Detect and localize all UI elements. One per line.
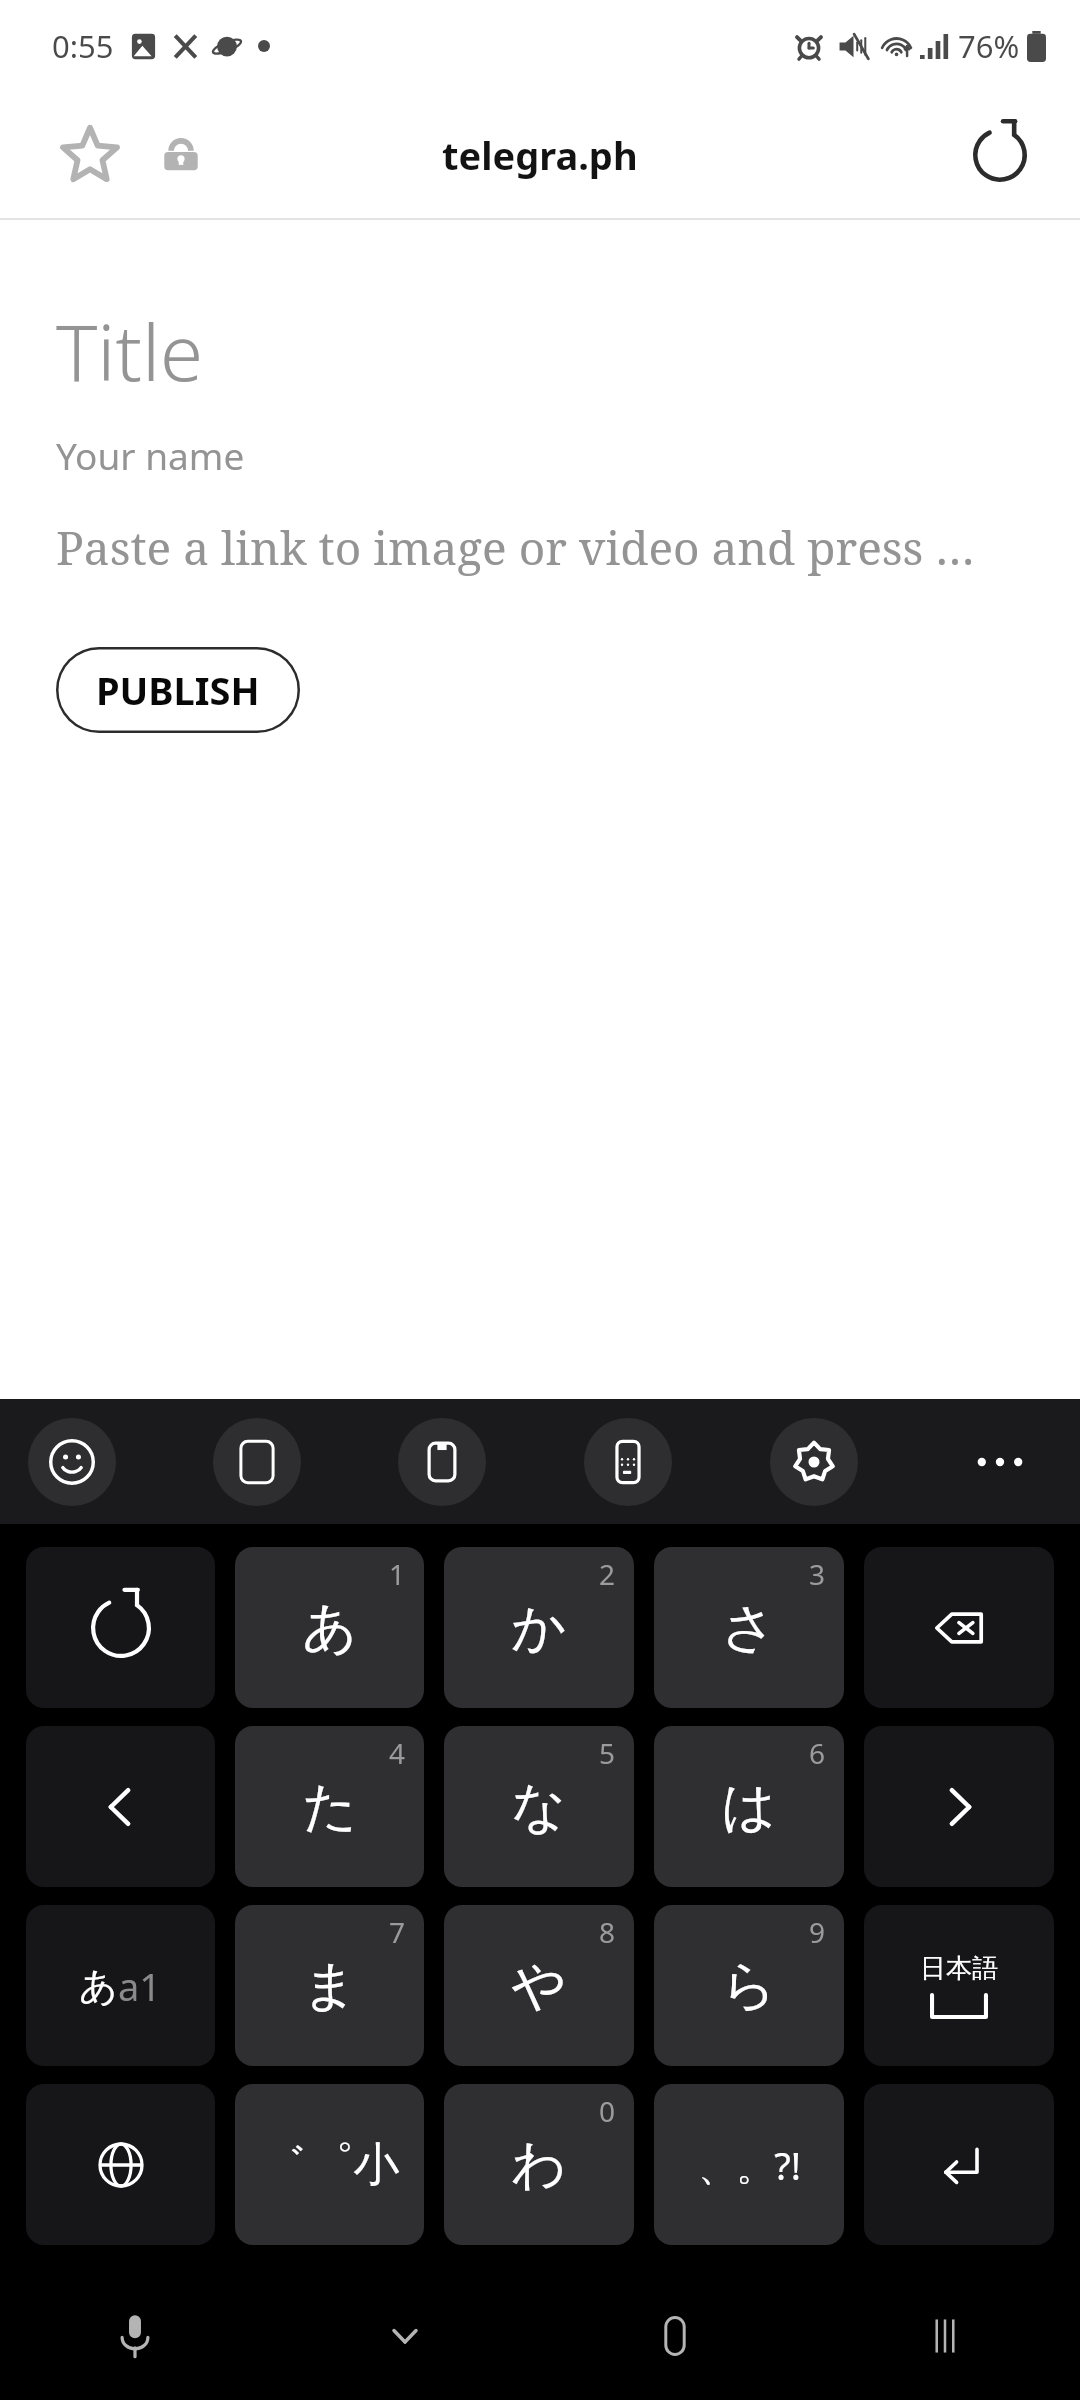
staticText: は: [721, 1773, 777, 1841]
button[interactable]: More options: [956, 1418, 1044, 1506]
button[interactable]: Home: [540, 2272, 810, 2400]
staticText: さ: [721, 1594, 777, 1662]
staticText: telegra.ph: [442, 129, 638, 181]
staticText: 0: [599, 2092, 616, 2130]
button[interactable]: Backspace: [864, 1547, 1054, 1708]
staticText: PUBLISH: [96, 664, 260, 716]
button[interactable]: か: [444, 1547, 634, 1708]
staticText: 5: [599, 1734, 616, 1772]
button[interactable]: Your name: [56, 430, 245, 480]
staticText: 4: [389, 1734, 406, 1772]
button[interactable]: Reload page: [952, 107, 1048, 203]
staticText: あ: [79, 1962, 118, 2010]
button[interactable]: ら: [654, 1905, 844, 2066]
button[interactable]: Paste a link to image or video and press…: [56, 516, 975, 579]
button[interactable]: Symbols: [213, 1418, 301, 1506]
button[interactable]: あ: [235, 1547, 424, 1708]
staticText: 6: [809, 1734, 826, 1772]
button[interactable]: や: [444, 1905, 634, 2066]
button[interactable]: さ: [654, 1547, 844, 1708]
button[interactable]: は: [654, 1726, 844, 1887]
staticText: a1: [118, 1960, 162, 2012]
staticText: な: [511, 1773, 567, 1841]
staticText: 1: [389, 1555, 406, 1593]
staticText: や: [511, 1952, 567, 2020]
button[interactable]: 、。?!: [654, 2084, 844, 2245]
button[interactable]: Clipboard: [398, 1418, 486, 1506]
button[interactable]: ゛゜小: [235, 2084, 424, 2245]
button[interactable]: ま: [235, 1905, 424, 2066]
button[interactable]: Enter: [864, 2084, 1054, 2245]
staticText: あ: [302, 1594, 358, 1662]
staticText: 2: [599, 1555, 616, 1593]
staticText: ま: [302, 1952, 358, 2020]
button[interactable]: PUBLISH: [56, 647, 300, 733]
button[interactable]: Recent apps: [810, 2272, 1080, 2400]
button[interactable]: Settings: [770, 1418, 858, 1506]
button[interactable]: Emoji: [28, 1418, 116, 1506]
staticText: ゛゜小: [259, 2136, 400, 2194]
staticText: 日本語: [920, 1952, 998, 1985]
button[interactable]: Undo: [26, 1547, 215, 1708]
button[interactable]: Title: [56, 298, 204, 404]
button[interactable]: Site information: [144, 118, 218, 192]
staticText: わ: [511, 2131, 567, 2199]
button[interactable]: た: [235, 1726, 424, 1887]
staticText: 8: [599, 1913, 616, 1951]
staticText: 7: [389, 1913, 406, 1951]
staticText: 3: [809, 1555, 826, 1593]
button[interactable]: Move cursor left: [26, 1726, 215, 1887]
button[interactable]: Keyboard layout: [584, 1418, 672, 1506]
button[interactable]: Voice input: [0, 2272, 270, 2400]
staticText: た: [302, 1773, 358, 1841]
button[interactable]: Bookmark: [38, 103, 142, 207]
staticText: ら: [721, 1952, 777, 2020]
button[interactable]: Hide keyboard: [270, 2272, 540, 2400]
button[interactable]: わ: [444, 2084, 634, 2245]
staticText: 、。?!: [698, 2139, 801, 2191]
button[interactable]: な: [444, 1726, 634, 1887]
staticText: 76%: [958, 25, 1020, 67]
staticText: か: [511, 1594, 567, 1662]
staticText: 9: [809, 1913, 826, 1951]
button[interactable]: Switch input mode: [26, 1905, 215, 2066]
button[interactable]: Change keyboard language: [26, 2084, 215, 2245]
staticText: 0:55: [52, 25, 114, 67]
button[interactable]: Space: [864, 1905, 1054, 2066]
button[interactable]: Move cursor right: [864, 1726, 1054, 1887]
